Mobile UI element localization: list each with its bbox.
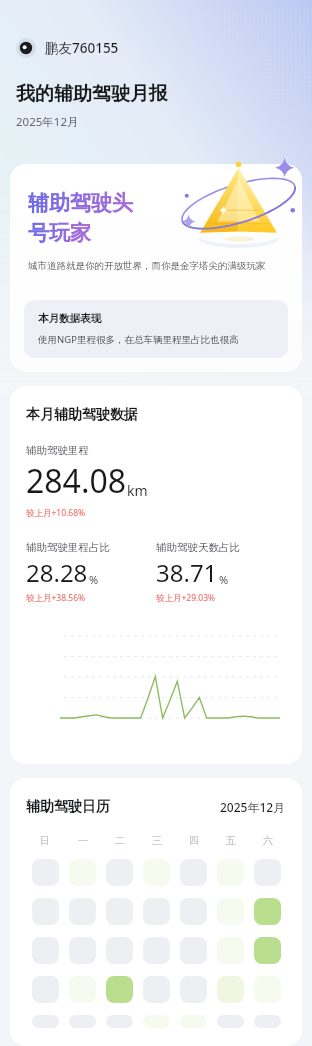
- staticText: 城市道路就是你的开放世界，而你是金字塔尖的满级玩家: [28, 260, 266, 272]
- button[interactable]: [217, 937, 244, 964]
- button[interactable]: [32, 937, 59, 964]
- staticText: 号玩家: [28, 220, 91, 246]
- staticText: %: [219, 572, 229, 587]
- button[interactable]: [106, 859, 133, 886]
- button[interactable]: [180, 1015, 207, 1028]
- staticText: 鹏友760155: [45, 39, 119, 57]
- button[interactable]: 辅助驾驶头: [10, 164, 302, 372]
- button[interactable]: [254, 1015, 281, 1028]
- button[interactable]: [254, 898, 281, 925]
- button[interactable]: [106, 1015, 133, 1028]
- staticText: 较上月+29.03%: [156, 592, 216, 604]
- staticText: 本月数据表现: [38, 312, 101, 325]
- button[interactable]: [180, 859, 207, 886]
- button[interactable]: [69, 859, 96, 886]
- button[interactable]: 辅助驾驶日历: [10, 778, 302, 1046]
- button[interactable]: 本月辅助驾驶数据: [10, 386, 302, 764]
- staticText: 辅助驾驶头: [28, 190, 133, 216]
- staticText: 一: [78, 834, 88, 847]
- button[interactable]: [69, 898, 96, 925]
- staticText: 三: [152, 834, 162, 847]
- button[interactable]: [69, 937, 96, 964]
- button[interactable]: [106, 976, 133, 1003]
- button[interactable]: [180, 937, 207, 964]
- staticText: 辅助驾驶天数占比: [156, 541, 240, 554]
- staticText: 辅助驾驶里程占比: [26, 541, 110, 554]
- button[interactable]: [69, 976, 96, 1003]
- button[interactable]: [143, 898, 170, 925]
- button[interactable]: [69, 1015, 96, 1028]
- staticText: 四: [189, 834, 199, 847]
- button[interactable]: [32, 1015, 59, 1028]
- button[interactable]: [106, 937, 133, 964]
- button[interactable]: [143, 1015, 170, 1028]
- staticText: 日: [40, 834, 50, 847]
- button[interactable]: [180, 898, 207, 925]
- staticText: 二: [115, 834, 125, 847]
- staticText: %: [89, 572, 99, 587]
- button[interactable]: [217, 898, 244, 925]
- staticText: 284.08: [26, 459, 127, 503]
- button[interactable]: [32, 859, 59, 886]
- button[interactable]: [254, 937, 281, 964]
- button[interactable]: 鹏友760155: [16, 36, 119, 60]
- staticText: 使用NGP里程很多，在总车辆里程里占比也很高: [38, 333, 239, 346]
- button[interactable]: [254, 859, 281, 886]
- button[interactable]: [217, 976, 244, 1003]
- button[interactable]: [143, 937, 170, 964]
- staticText: 我的辅助驾驶月报: [16, 82, 168, 106]
- button[interactable]: [254, 976, 281, 1003]
- staticText: 28.28: [26, 556, 88, 589]
- staticText: 辅助驾驶里程: [26, 444, 89, 457]
- button[interactable]: 本月数据表现: [24, 300, 288, 358]
- button[interactable]: [143, 976, 170, 1003]
- button[interactable]: [143, 859, 170, 886]
- staticText: 五: [226, 834, 236, 847]
- staticText: 较上月+38.56%: [26, 592, 86, 604]
- staticText: km: [127, 481, 148, 500]
- staticText: 较上月+10.68%: [26, 507, 86, 519]
- button[interactable]: [106, 898, 133, 925]
- button[interactable]: [217, 859, 244, 886]
- staticText: 38.71: [156, 556, 218, 589]
- staticText: 辅助驾驶日历: [26, 798, 110, 816]
- staticText: 2025年12月: [220, 799, 286, 815]
- button[interactable]: [217, 1015, 244, 1028]
- staticText: 本月辅助驾驶数据: [26, 406, 138, 424]
- staticText: 六: [263, 834, 273, 847]
- button[interactable]: [180, 976, 207, 1003]
- staticText: 2025年12月: [16, 114, 79, 130]
- button[interactable]: [32, 898, 59, 925]
- button[interactable]: [32, 976, 59, 1003]
